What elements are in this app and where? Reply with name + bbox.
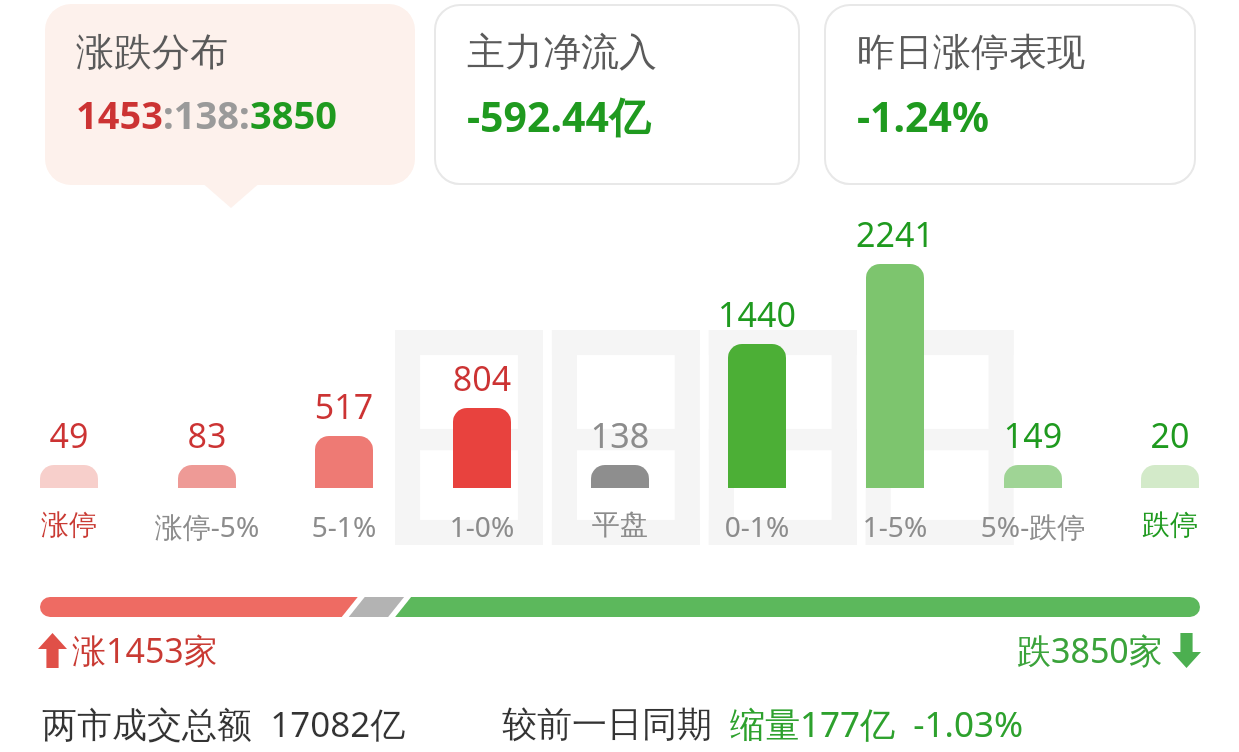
- button[interactable]: [1141, 465, 1199, 488]
- staticText: 平盘: [541, 507, 699, 542]
- button[interactable]: [1004, 465, 1062, 488]
- staticText: 3850: [250, 88, 337, 140]
- button[interactable]: [178, 465, 236, 488]
- button[interactable]: Advance decline ratio: [40, 597, 1200, 617]
- staticText: 两市成交总额 17082亿: [42, 700, 406, 748]
- staticText: 1453: [76, 88, 163, 140]
- button[interactable]: [453, 408, 511, 488]
- button[interactable]: Advancing: [38, 627, 218, 673]
- staticText: 20: [1101, 412, 1239, 458]
- staticText: 517: [275, 383, 413, 429]
- staticText: 涨1453家: [72, 627, 218, 673]
- button[interactable]: [315, 436, 373, 488]
- button[interactable]: 昨日涨停表现: [824, 4, 1196, 185]
- staticText: 83: [138, 412, 276, 458]
- staticText: 跌3850家: [1017, 627, 1163, 673]
- staticText: 804: [413, 355, 551, 401]
- staticText: 涨停-5%: [128, 507, 286, 545]
- staticText: 1-0%: [403, 507, 561, 545]
- staticText: -592.44亿: [467, 88, 650, 144]
- staticText: 涨跌分布: [76, 28, 228, 76]
- button[interactable]: 涨跌分布: [45, 4, 415, 185]
- staticText: -1.24%: [857, 88, 989, 144]
- button[interactable]: [866, 264, 924, 488]
- button[interactable]: 跌3850家: [1017, 627, 1201, 673]
- staticText: 跌停: [1091, 507, 1239, 542]
- button[interactable]: [728, 344, 786, 488]
- staticText: 主力净流入: [467, 28, 657, 76]
- staticText: 2241: [826, 211, 964, 257]
- staticText: 1-5%: [816, 507, 974, 545]
- staticText: 5-1%: [265, 507, 423, 545]
- staticText: 49: [0, 412, 138, 458]
- staticText: 缩量177亿 -1.03%: [730, 700, 1024, 748]
- staticText: 涨停: [0, 507, 148, 542]
- staticText: 149: [964, 412, 1102, 458]
- staticText: 5%-跌停: [954, 507, 1112, 545]
- staticText: 昨日涨停表现: [857, 28, 1085, 76]
- staticText: 0-1%: [678, 507, 836, 545]
- button[interactable]: 主力净流入: [434, 4, 800, 185]
- staticText: 较前一日同期: [502, 702, 712, 746]
- staticText: :138:: [163, 88, 250, 140]
- other: Advancing: [38, 633, 67, 668]
- other: Declining: [1172, 633, 1201, 668]
- staticText: 1440: [688, 291, 826, 337]
- button[interactable]: [40, 465, 98, 488]
- button[interactable]: [591, 465, 649, 488]
- staticText: 138: [551, 412, 689, 458]
